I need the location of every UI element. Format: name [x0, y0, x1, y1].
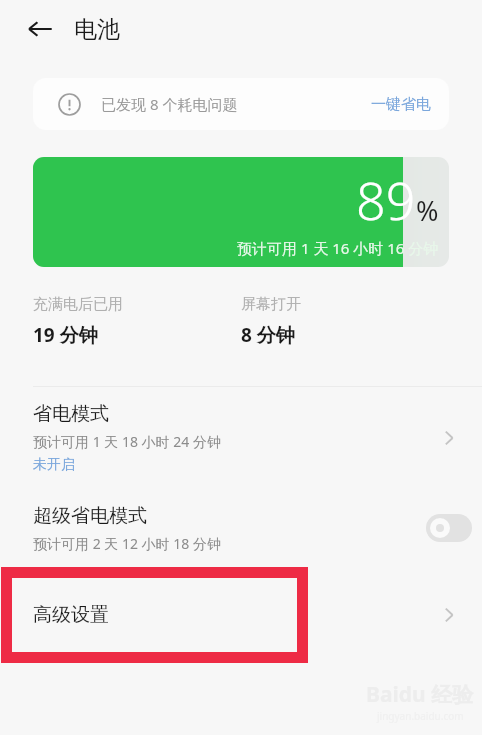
- button[interactable]: 一键省电: [367, 91, 435, 118]
- button[interactable]: 已发现 8 个耗电问题: [33, 78, 449, 130]
- button[interactable]: Back: [18, 7, 62, 51]
- button[interactable]: 89: [33, 157, 449, 267]
- staticText: 89: [356, 164, 416, 235]
- staticText: 8 分钟: [241, 322, 295, 348]
- staticText: 超级省电模式: [33, 504, 147, 528]
- staticText: 电池: [74, 15, 120, 44]
- button[interactable]: 超级省电模式开关: [426, 514, 472, 542]
- staticText: Baidu 经验: [366, 680, 474, 709]
- staticText: %: [416, 192, 439, 229]
- staticText: 预计可用 2 天 12 小时 18 分钟: [33, 534, 221, 553]
- staticText: 一键省电: [371, 95, 431, 114]
- staticText: 预计可用 1 天 18 小时 24 分钟: [33, 432, 221, 451]
- staticText: 预计可用 1 天 16 小时 16 分钟: [237, 238, 439, 258]
- button[interactable]: 超级省电模式: [0, 489, 482, 567]
- staticText: 省电模式: [33, 402, 109, 426]
- button[interactable]: 高级设置: [0, 567, 482, 663]
- staticText: 已发现 8 个耗电问题: [101, 94, 238, 114]
- staticText: 未开启: [33, 456, 75, 474]
- staticText: 充满电后已用: [33, 295, 123, 314]
- staticText: 19 分钟: [33, 322, 98, 348]
- staticText: 屏幕打开: [241, 295, 301, 314]
- staticText: 高级设置: [33, 603, 109, 627]
- button[interactable]: 省电模式: [0, 387, 482, 489]
